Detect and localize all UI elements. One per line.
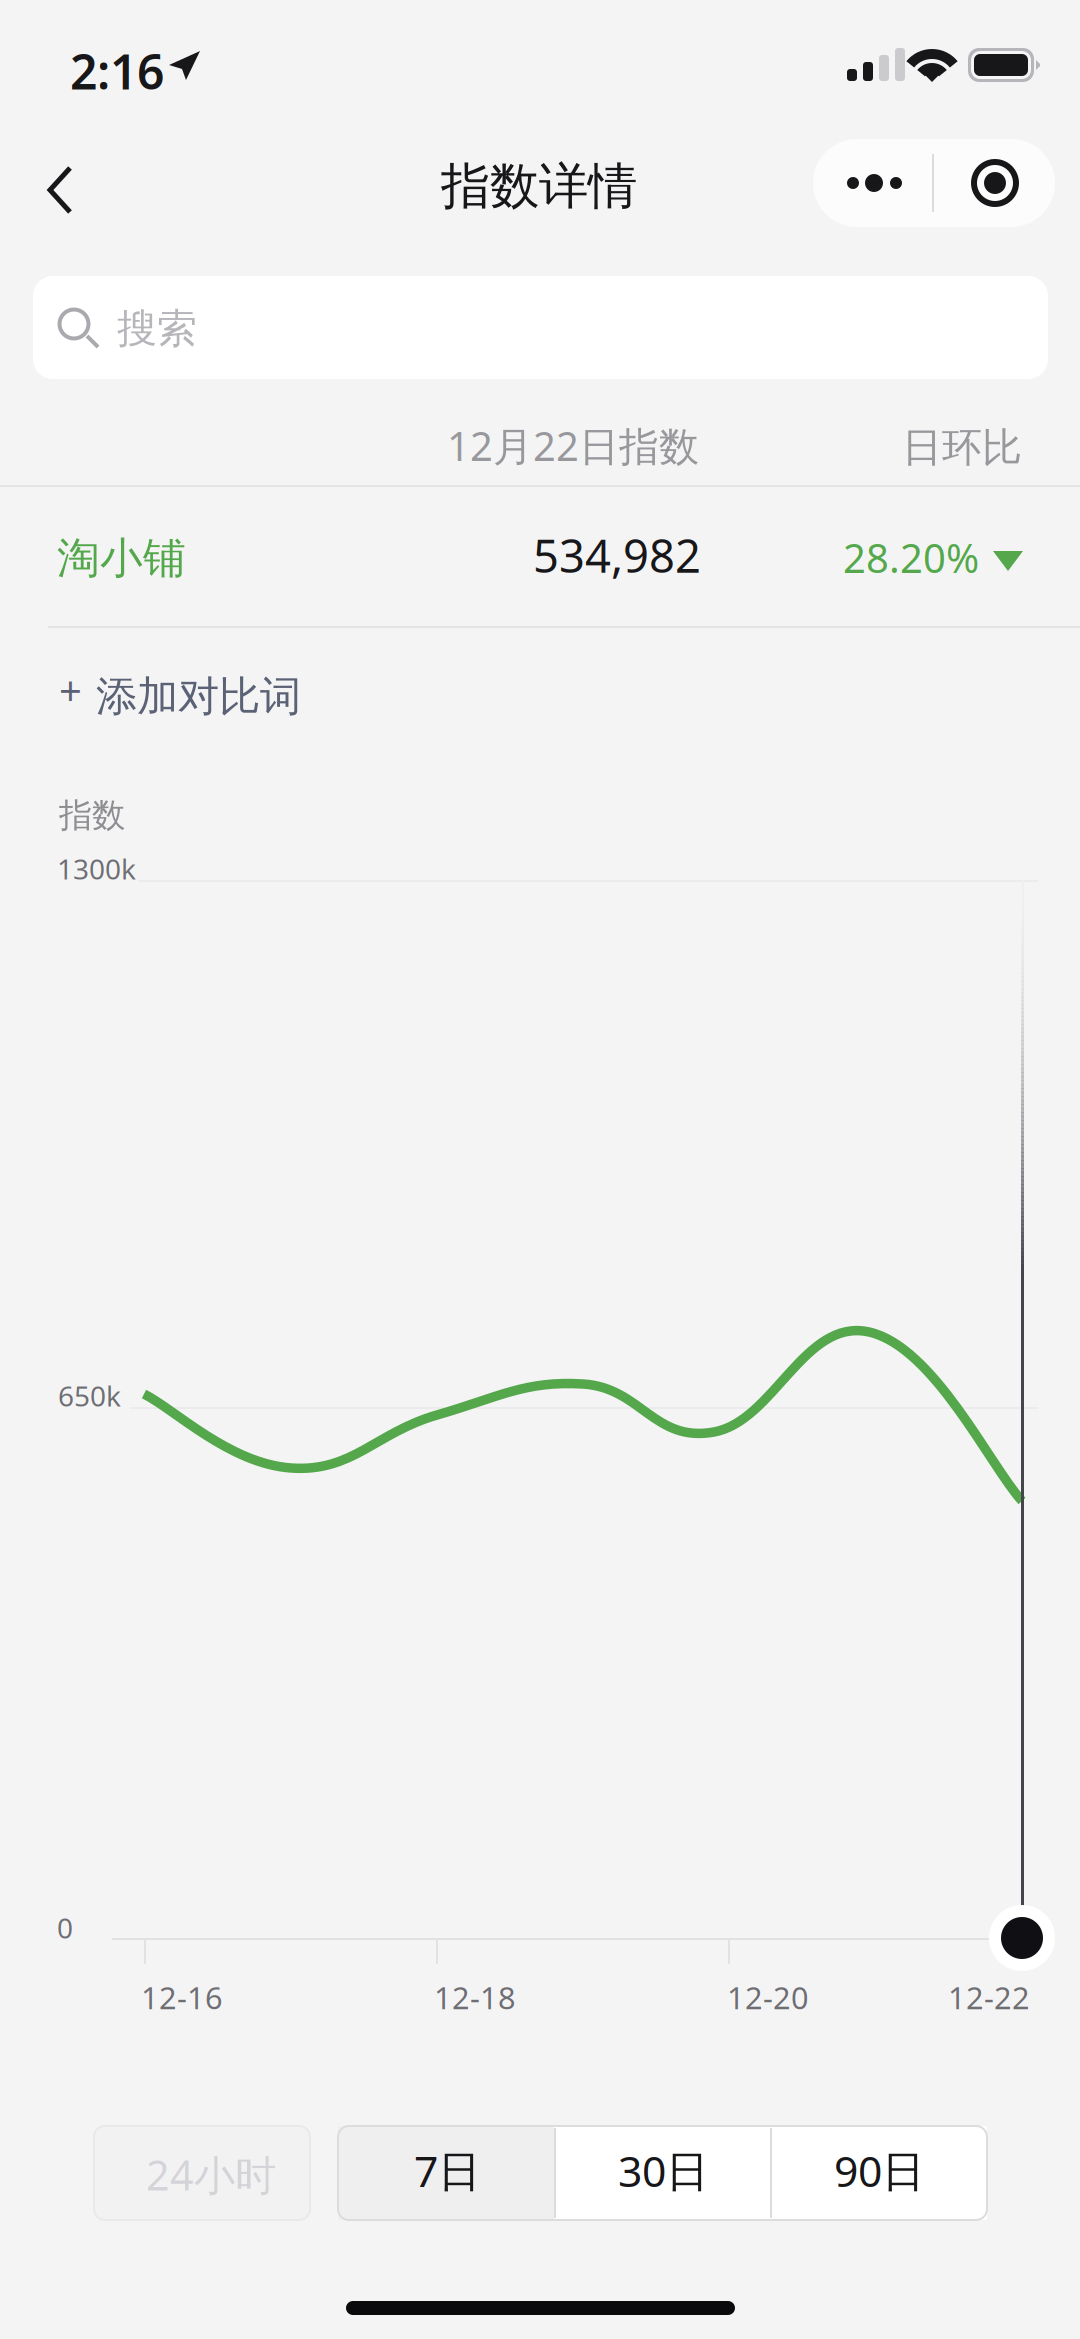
staticText: + — [59, 663, 82, 716]
staticText: 534,982 — [533, 525, 701, 585]
button[interactable]: 30日 — [0, 0, 1080, 2339]
button[interactable]: 7日 — [0, 0, 1080, 2339]
staticText: 12-16 — [141, 1977, 223, 2018]
button[interactable]: Close mini program — [0, 0, 1080, 2339]
staticText: 搜索 — [117, 304, 197, 353]
button[interactable]: 淘小铺 — [0, 0, 1080, 2339]
staticText: 12月22日指数 — [447, 419, 699, 472]
staticText: 24小时 — [146, 2147, 276, 2202]
button[interactable]: 24小时 — [0, 0, 1080, 2339]
button[interactable]: More options — [0, 0, 1080, 2339]
staticText: 30日 — [618, 2142, 709, 2199]
staticText: 28.20% — [843, 531, 979, 584]
staticText: 12-22 — [948, 1977, 1030, 2018]
button[interactable]: 搜索 — [0, 0, 1080, 2339]
staticText: 12-18 — [434, 1977, 516, 2018]
staticText: 12-20 — [727, 1977, 809, 2018]
button[interactable]: + — [0, 0, 1080, 2339]
button[interactable]: Back — [0, 0, 1080, 2339]
staticText: 指数详情 — [441, 156, 637, 217]
staticText: 淘小铺 — [57, 532, 186, 584]
staticText: 7日 — [414, 2142, 481, 2199]
staticText: 90日 — [834, 2142, 925, 2199]
staticText: 添加对比词 — [96, 671, 301, 722]
staticText: 日环比 — [902, 423, 1022, 472]
staticText: 0 — [57, 1909, 73, 1946]
staticText: 2:16 — [70, 39, 164, 103]
staticText: 指数 — [59, 795, 125, 836]
staticText: 1300k — [57, 850, 136, 887]
button[interactable]: 90日 — [0, 0, 1080, 2339]
staticText: 650k — [58, 1377, 121, 1414]
